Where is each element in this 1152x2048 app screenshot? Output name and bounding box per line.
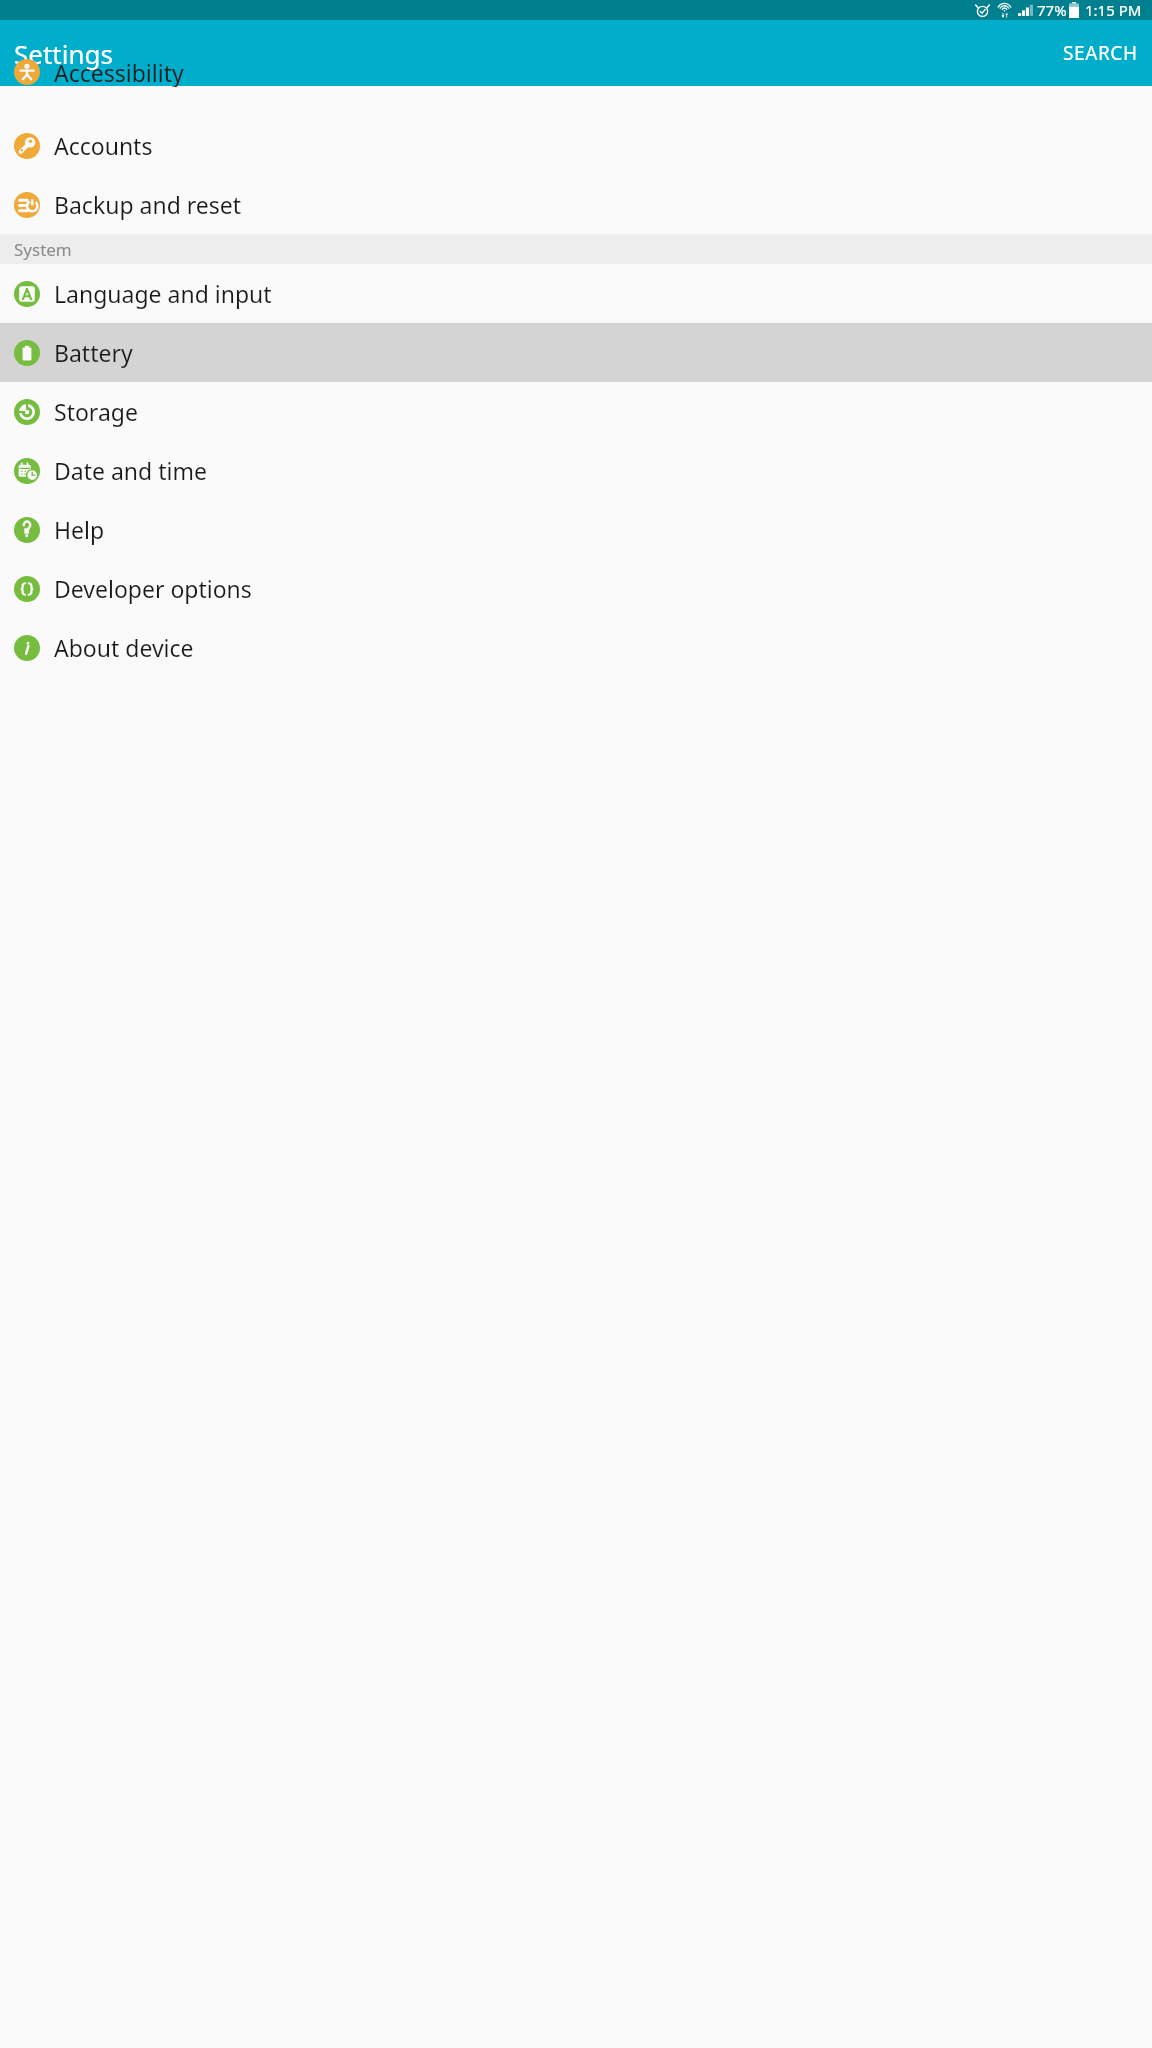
staticText: Backup and reset [54, 189, 242, 220]
button[interactable]: Developer options [0, 559, 1152, 618]
staticText: About device [54, 632, 194, 663]
button[interactable]: Help [0, 500, 1152, 559]
staticText: Accounts [54, 130, 153, 161]
staticText: Storage [54, 396, 138, 427]
staticText: Developer options [54, 573, 252, 604]
staticText: Date and time [54, 455, 207, 486]
button[interactable]: About device [0, 618, 1152, 677]
button[interactable]: Accounts [0, 116, 1152, 175]
staticText: 1:15 PM [1085, 0, 1142, 20]
staticText: 77% [1037, 0, 1067, 20]
button[interactable]: Backup and reset [0, 175, 1152, 234]
staticText: Language and input [54, 278, 272, 309]
staticText: Battery [54, 337, 133, 368]
button[interactable]: Storage [0, 382, 1152, 441]
button[interactable]: Date and time [0, 441, 1152, 500]
staticText: System [14, 238, 72, 261]
button[interactable]: Battery [0, 323, 1152, 382]
staticText: Help [54, 514, 105, 545]
staticText: SEARCH [1063, 40, 1138, 66]
button[interactable]: Language and input [0, 264, 1152, 323]
staticText: Settings [14, 36, 113, 71]
button[interactable]: SEARCH [1049, 30, 1152, 76]
staticText: Accessibility [54, 57, 184, 87]
